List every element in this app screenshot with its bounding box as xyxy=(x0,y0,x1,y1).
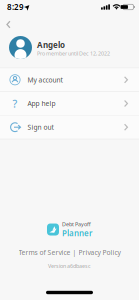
staticText: Terms of Service xyxy=(18,248,70,257)
button[interactable]: Terms of Service xyxy=(18,248,70,257)
staticText: Privacy Policy xyxy=(78,248,120,257)
staticText: Debt Payoff xyxy=(62,221,91,228)
staticText: 8:29 xyxy=(7,2,24,12)
staticText: | xyxy=(72,248,76,257)
staticText: Angelo xyxy=(37,40,65,50)
button[interactable]: My account xyxy=(0,68,139,91)
staticText: Version a6dbaesc xyxy=(48,262,91,270)
staticText: Pro member until Dec 12, 2022 xyxy=(37,50,110,57)
staticText: Sign out xyxy=(27,123,53,132)
button[interactable]: Privacy Policy xyxy=(78,248,120,257)
staticText: My account xyxy=(27,75,62,84)
staticText: ? xyxy=(12,96,17,111)
button[interactable]: ? xyxy=(0,92,139,115)
button[interactable]: Back xyxy=(2,18,14,30)
staticText: Planner xyxy=(62,228,92,238)
button[interactable]: Sign out xyxy=(0,116,139,139)
staticText: App help xyxy=(27,99,55,108)
